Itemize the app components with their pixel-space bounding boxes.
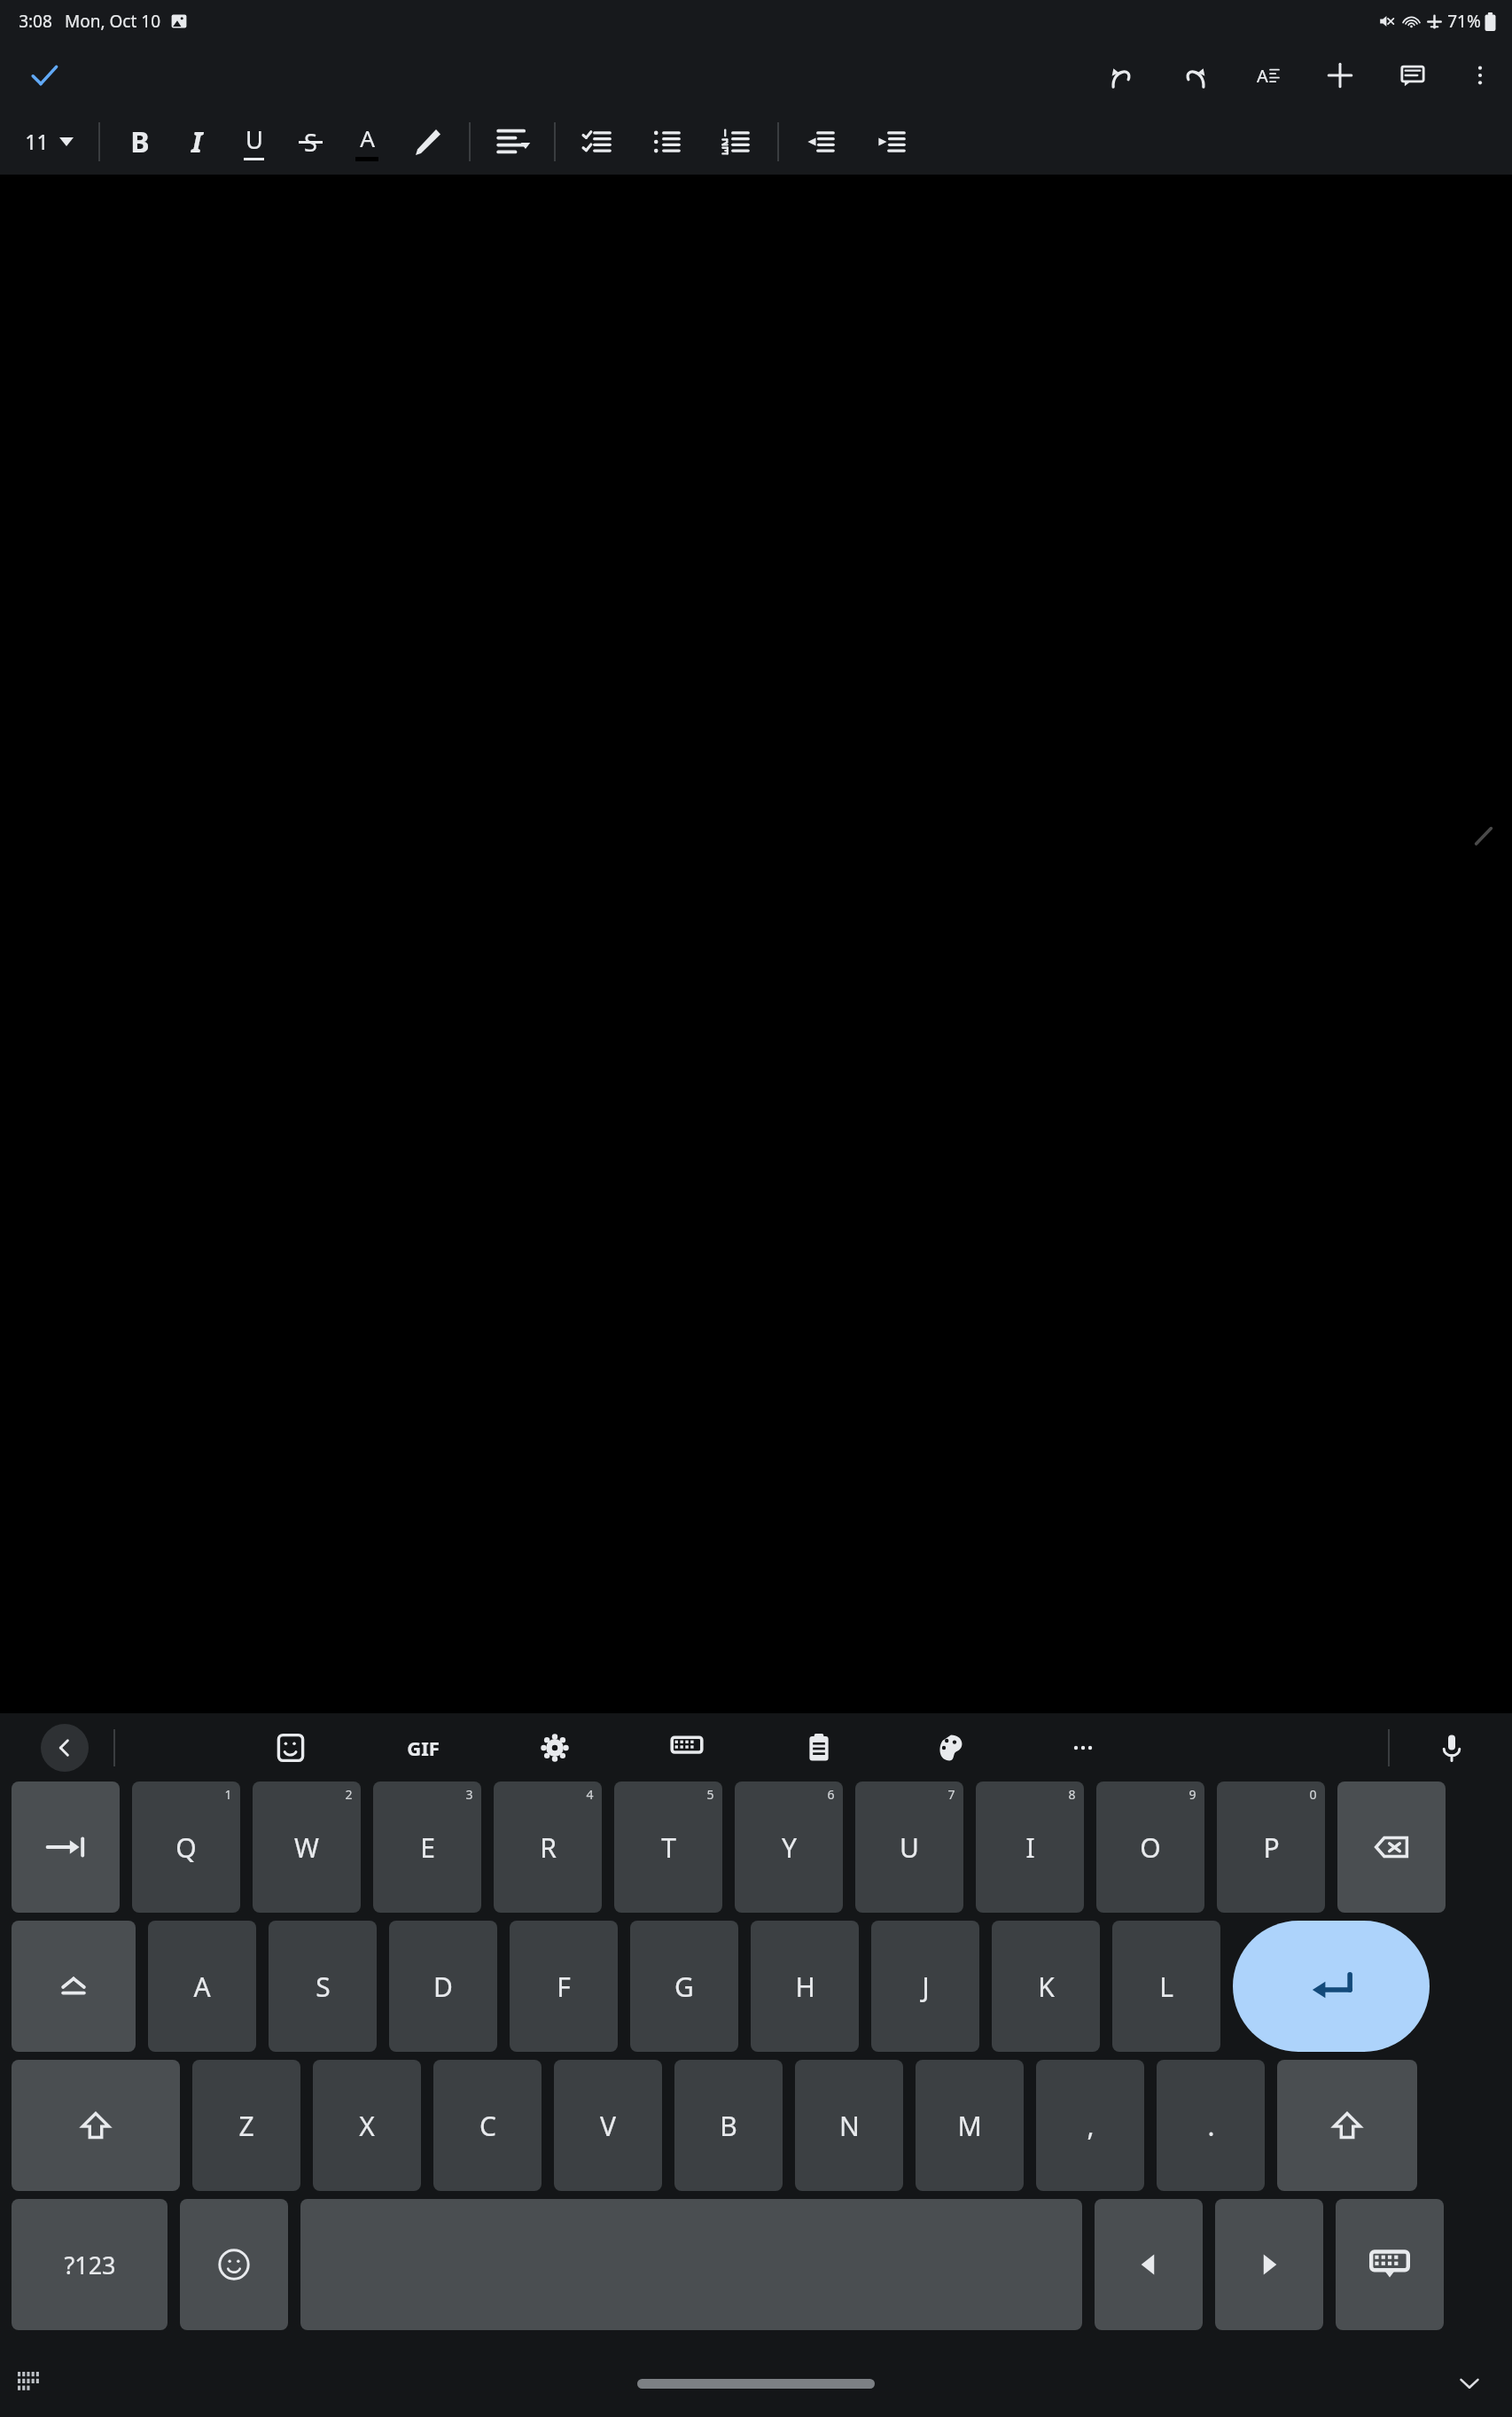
button[interactable]: Done — [14, 45, 74, 105]
button[interactable]: Q — [132, 1782, 240, 1913]
button[interactable]: Emoji — [180, 2199, 288, 2330]
button[interactable]: Underline — [226, 114, 281, 169]
button[interactable]: One-handed mode — [662, 1723, 712, 1773]
button[interactable]: E — [373, 1782, 481, 1913]
button[interactable]: I — [976, 1782, 1084, 1913]
staticText: 71% — [1447, 10, 1481, 33]
button[interactable]: M — [916, 2060, 1024, 2191]
button[interactable]: C — [433, 2060, 542, 2191]
button[interactable]: Decrease indent — [791, 113, 850, 171]
button[interactable]: ?123 — [12, 2199, 168, 2330]
staticText: 3:08 — [19, 10, 52, 33]
button[interactable]: Z — [192, 2060, 300, 2191]
button[interactable]: 11 — [19, 124, 79, 159]
staticText: P — [1263, 1829, 1280, 1866]
button[interactable]: Y — [735, 1782, 843, 1913]
staticText: 11 — [25, 128, 49, 155]
button[interactable]: Voice input — [1427, 1723, 1477, 1773]
button[interactable]: Switch keyboard — [9, 2363, 50, 2404]
button[interactable]: S — [269, 1921, 377, 2052]
button[interactable]: K — [992, 1921, 1100, 2052]
button[interactable]: GIF — [398, 1723, 448, 1773]
button[interactable]: Checklist — [568, 113, 627, 171]
button[interactable]: G — [630, 1921, 738, 2052]
staticText: V — [600, 2108, 616, 2144]
button[interactable]: Shift — [12, 2060, 180, 2191]
button[interactable]: More — [1058, 1723, 1108, 1773]
button[interactable]: Themes — [926, 1723, 976, 1773]
staticText: ?123 — [64, 2249, 116, 2281]
button[interactable]: N — [795, 2060, 903, 2191]
button[interactable]: Stickers — [266, 1723, 316, 1773]
button[interactable]: Shift — [1277, 2060, 1417, 2191]
staticText: A — [360, 122, 375, 154]
button[interactable]: U — [855, 1782, 963, 1913]
staticText: U — [900, 1829, 919, 1866]
button[interactable]: Alignment — [483, 113, 542, 171]
staticText: W — [294, 1829, 319, 1866]
button[interactable]: Back — [41, 1724, 89, 1772]
button[interactable]: Clipboard — [794, 1723, 844, 1773]
button[interactable]: Caps lock — [12, 1921, 136, 2052]
button[interactable]: Hide keyboard — [1336, 2199, 1444, 2330]
button[interactable]: A — [148, 1921, 256, 2052]
button[interactable]: Enter — [1233, 1921, 1430, 2052]
button[interactable]: Text color — [339, 114, 394, 169]
button[interactable]: Hide keyboard — [1446, 2360, 1493, 2406]
button[interactable]: Move cursor left — [1095, 2199, 1203, 2330]
button[interactable]: Edit — [1461, 813, 1507, 859]
staticText: A — [193, 1969, 211, 2005]
staticText: 4 — [586, 1786, 594, 1803]
button[interactable]: R — [494, 1782, 602, 1913]
staticText: N — [839, 2108, 860, 2144]
button[interactable]: Bold — [113, 114, 168, 169]
button[interactable]: F — [510, 1921, 618, 2052]
staticText: I — [1025, 1829, 1035, 1866]
staticText: 9 — [1189, 1786, 1196, 1803]
button[interactable]: Text formatting — [1239, 47, 1296, 104]
button[interactable]: O — [1096, 1782, 1204, 1913]
staticText: , — [1087, 2108, 1095, 2144]
staticText: H — [795, 1969, 815, 2005]
staticText: E — [420, 1829, 435, 1866]
button[interactable]: Increase indent — [862, 113, 921, 171]
button[interactable]: V — [554, 2060, 662, 2191]
button[interactable]: Settings — [530, 1723, 580, 1773]
button[interactable]: Tab — [12, 1782, 120, 1913]
button[interactable]: Strikethrough — [283, 114, 338, 169]
staticText: . — [1207, 2108, 1215, 2144]
button[interactable]: T — [614, 1782, 722, 1913]
staticText: D — [433, 1969, 453, 2005]
button[interactable]: X — [313, 2060, 421, 2191]
staticText: F — [557, 1969, 571, 2005]
staticText: 8 — [1068, 1786, 1076, 1803]
button[interactable]: Bulleted list — [637, 113, 696, 171]
button[interactable]: D — [389, 1921, 497, 2052]
button[interactable]: Move cursor right — [1215, 2199, 1323, 2330]
staticText: 5 — [706, 1786, 714, 1803]
button[interactable]: Redo — [1166, 47, 1223, 104]
button[interactable]: More options — [1457, 52, 1503, 98]
button[interactable]: Highlight color — [400, 114, 455, 169]
staticText: B — [720, 2108, 737, 2144]
staticText: 3 — [465, 1786, 473, 1803]
button[interactable]: Undo — [1094, 47, 1150, 104]
button[interactable]: . — [1157, 2060, 1265, 2191]
button[interactable]: , — [1036, 2060, 1144, 2191]
button[interactable]: L — [1112, 1921, 1220, 2052]
button[interactable]: W — [253, 1782, 361, 1913]
button[interactable]: Backspace — [1337, 1782, 1446, 1913]
button[interactable]: J — [871, 1921, 979, 2052]
staticText: 0 — [1309, 1786, 1317, 1803]
button[interactable]: H — [751, 1921, 859, 2052]
button[interactable]: Italic — [169, 114, 224, 169]
staticText: R — [540, 1829, 557, 1866]
button[interactable]: Comments — [1384, 47, 1441, 104]
button[interactable]: Numbered list — [706, 113, 765, 171]
button[interactable]: Insert — [1312, 47, 1368, 104]
staticText: C — [479, 2108, 496, 2144]
staticText: J — [922, 1969, 930, 2005]
button[interactable]: P — [1217, 1782, 1325, 1913]
button[interactable]: B — [674, 2060, 783, 2191]
